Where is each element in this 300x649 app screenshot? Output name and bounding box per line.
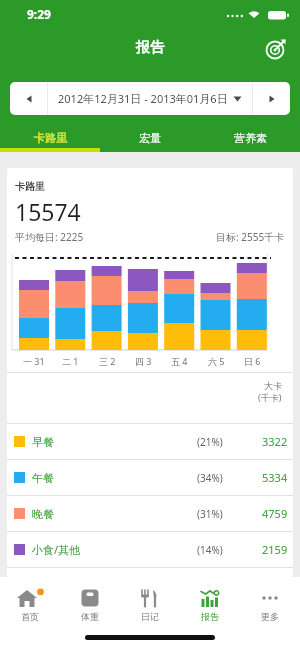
staticText: 三 2 — [99, 355, 116, 367]
staticText: 二 1 — [62, 355, 79, 367]
button[interactable]: 2012年12月31日 - 2013年01月6日 — [48, 82, 252, 115]
staticText: 更多 — [261, 611, 279, 622]
staticText: (千卡) — [258, 391, 282, 403]
button[interactable]: 宏量 — [100, 124, 200, 152]
staticText: 晚餐 — [32, 507, 54, 521]
staticText: 早餐 — [32, 435, 54, 449]
staticText: 目标: 2555千卡 — [216, 230, 285, 244]
staticText: 一 31 — [23, 355, 45, 367]
button[interactable]: 日记 — [120, 588, 180, 622]
button[interactable] — [10, 82, 47, 115]
staticText: 5334 — [262, 470, 288, 485]
staticText: 9:29 — [27, 6, 51, 22]
button[interactable]: 午餐 — [7, 459, 293, 495]
button[interactable]: 卡路里 — [0, 124, 100, 152]
button[interactable]: 更多 — [240, 588, 300, 622]
staticText: 2012年12月31日 - 2013年01月6日 — [58, 91, 228, 106]
button[interactable] — [253, 82, 290, 115]
staticText: (31%) — [197, 507, 223, 521]
staticText: (21%) — [197, 435, 223, 449]
button[interactable]: 体重 — [60, 588, 120, 622]
button[interactable]: 小食/其他 — [7, 531, 293, 567]
button[interactable]: 早餐 — [7, 423, 293, 459]
staticText: 报告 — [201, 611, 219, 622]
staticText: 卡路里 — [34, 131, 67, 145]
staticText: 15574 — [15, 196, 81, 227]
button[interactable] — [265, 36, 289, 60]
staticText: 五 4 — [171, 355, 188, 367]
staticText: 首页 — [21, 611, 39, 622]
staticText: 卡路里 — [15, 180, 45, 193]
staticText: 午餐 — [32, 471, 54, 485]
staticText: 3322 — [262, 434, 288, 449]
staticText: 平均每日: 2225 — [15, 230, 84, 244]
staticText: 营养素 — [234, 131, 267, 145]
staticText: 六 5 — [208, 355, 225, 367]
staticText: 4759 — [262, 506, 288, 521]
staticText: 报告 — [136, 39, 164, 57]
staticText: 2159 — [262, 542, 288, 557]
staticText: 日 6 — [244, 355, 261, 367]
button[interactable]: 晚餐 — [7, 495, 293, 531]
staticText: 四 3 — [135, 355, 152, 367]
staticText: 大卡 — [264, 380, 282, 391]
button[interactable]: 首页 — [0, 588, 60, 622]
staticText: (14%) — [197, 543, 223, 557]
button[interactable]: 报告 — [180, 588, 240, 622]
staticText: 宏量 — [139, 131, 161, 145]
staticText: (34%) — [197, 471, 223, 485]
staticText: 体重 — [81, 611, 99, 622]
staticText: 小食/其他 — [32, 542, 81, 557]
button[interactable]: 营养素 — [200, 124, 300, 152]
staticText: 日记 — [141, 611, 159, 622]
